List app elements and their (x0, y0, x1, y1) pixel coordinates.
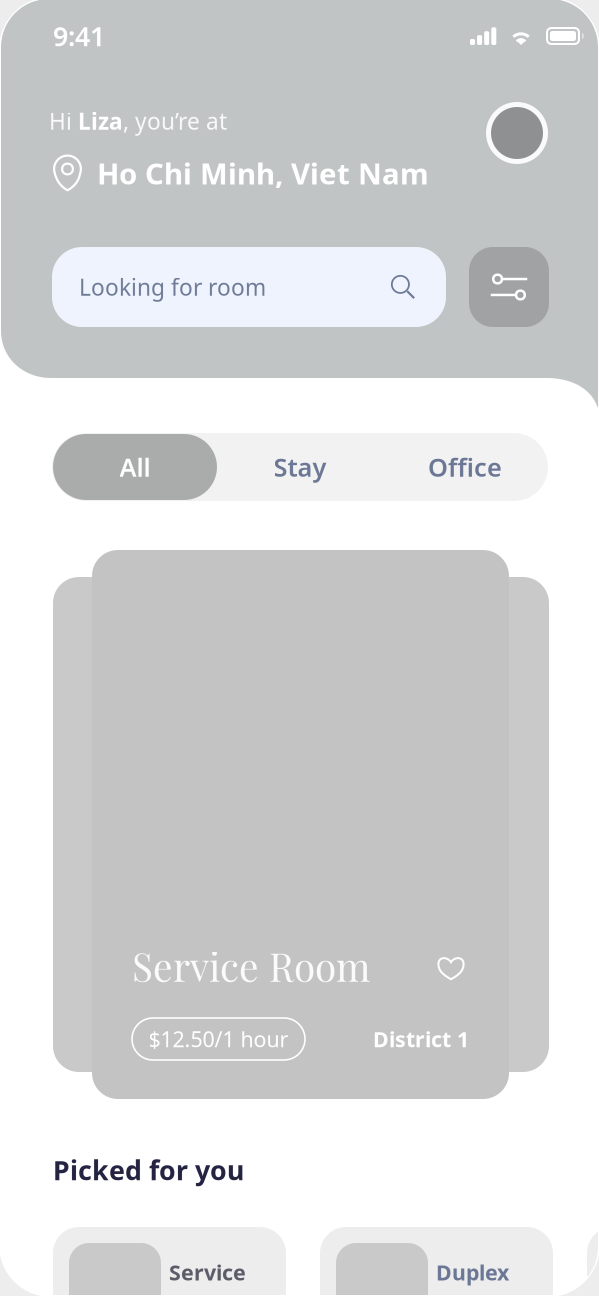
staticText: $12.50/1 hour (148, 1025, 288, 1053)
button[interactable]: Filters (469, 247, 549, 327)
staticText: All (119, 450, 150, 484)
button[interactable]: Duplex (320, 1227, 553, 1296)
staticText: Ho Chi Minh, Viet Nam (97, 153, 429, 192)
button[interactable]: Stay (217, 434, 383, 500)
staticText: Room (169, 1289, 230, 1296)
button[interactable]: Looking for room (52, 247, 446, 327)
staticText: Hi (49, 106, 78, 136)
button[interactable]: All (53, 434, 217, 500)
staticText: Room (436, 1289, 497, 1296)
button[interactable]: Add to favourites (437, 954, 465, 982)
button[interactable]: Service (53, 1227, 286, 1296)
button[interactable]: Studio (587, 1227, 599, 1296)
staticText: Looking for room (79, 272, 266, 302)
staticText: Service (169, 1258, 246, 1286)
staticText: Liza (78, 106, 123, 136)
staticText: Picked for you (53, 1152, 244, 1188)
staticText: Service Room (132, 940, 370, 991)
staticText: , you’re at (123, 106, 227, 136)
staticText: 9:41 (53, 18, 105, 54)
staticText: Duplex (436, 1258, 509, 1286)
button[interactable]: Office (382, 434, 548, 500)
button[interactable]: Profile (486, 102, 548, 164)
staticText: Stay (273, 450, 326, 484)
staticText: Office (428, 450, 502, 484)
staticText: District 1 (373, 1025, 469, 1053)
